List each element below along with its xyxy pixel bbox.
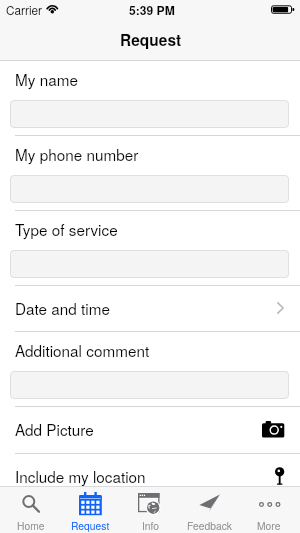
button[interactable]: Request [60, 487, 120, 533]
staticText: My phone number [15, 143, 139, 165]
other: Open date and time picker [277, 302, 284, 314]
button[interactable]: Additional comment [0, 331, 300, 406]
staticText: Date and time [15, 297, 110, 319]
button[interactable]: Info [120, 487, 180, 533]
staticText: Add Picture [15, 418, 94, 440]
button[interactable]: Feedback [180, 487, 240, 533]
button[interactable] [10, 250, 289, 278]
button[interactable]: More [240, 487, 300, 533]
button[interactable]: Add Picture [0, 406, 300, 453]
button[interactable]: Home [0, 487, 60, 533]
staticText: Carrier [6, 1, 43, 18]
staticText: Request [120, 29, 182, 51]
staticText: My name [15, 68, 78, 90]
other: Add Picture [262, 421, 284, 438]
button[interactable]: My phone number [0, 135, 300, 210]
staticText: Include my location [15, 465, 146, 487]
button[interactable] [10, 371, 289, 399]
staticText: Request [71, 518, 110, 533]
button[interactable]: Type of service [0, 210, 300, 285]
staticText: Info [142, 518, 160, 533]
staticText: Home [17, 518, 45, 533]
staticText: Type of service [15, 218, 118, 240]
other: Include my location [275, 467, 284, 485]
other: Battery [271, 5, 296, 15]
staticText: Feedback [187, 518, 233, 533]
staticText: 5:39 PM [129, 1, 175, 18]
button[interactable]: My name [0, 60, 300, 135]
button[interactable]: Include my location [0, 453, 300, 499]
other: Wi-Fi signal [46, 4, 59, 15]
staticText: Additional comment [15, 339, 150, 361]
button[interactable]: Date and time [0, 285, 300, 331]
button[interactable] [10, 100, 289, 128]
staticText: More [257, 518, 281, 533]
button[interactable] [10, 175, 289, 203]
